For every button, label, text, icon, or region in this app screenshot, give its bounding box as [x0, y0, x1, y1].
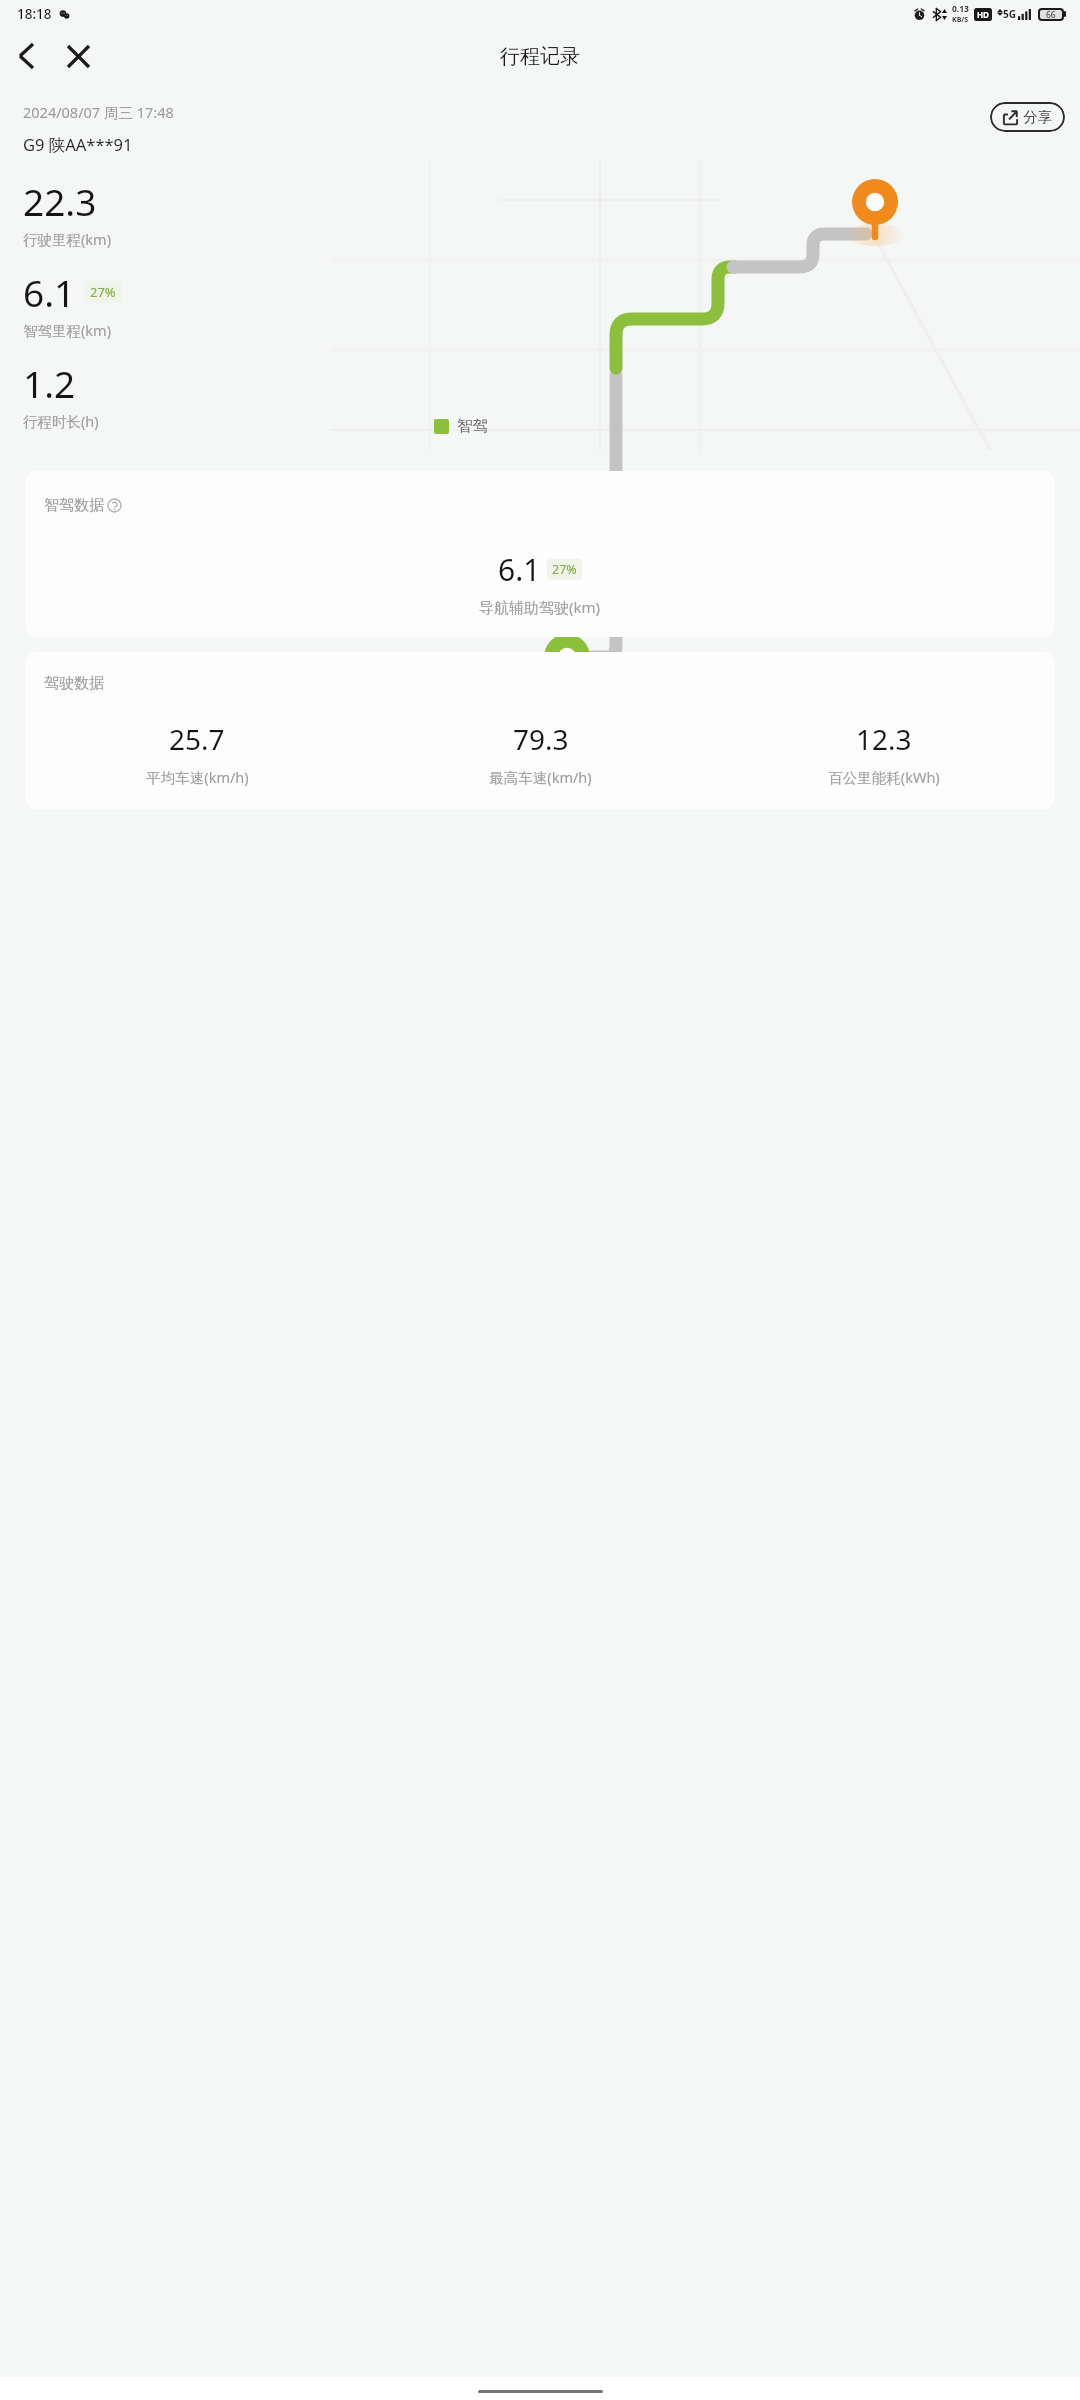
staticText: 百公里能耗(kWh) [828, 767, 940, 787]
staticText: 12.3 [856, 720, 912, 758]
staticText: 分享 [1023, 108, 1052, 126]
staticText: 18:18 [17, 5, 52, 23]
button[interactable]: Close [52, 30, 104, 82]
staticText: 6.1 [498, 549, 541, 590]
staticText: 79.3 [513, 720, 569, 758]
button[interactable]: Back [0, 30, 52, 82]
staticText: 行驶里程(km) [23, 229, 112, 249]
staticText: 平均车速(km/h) [146, 767, 249, 787]
staticText: 27% [552, 561, 577, 578]
staticText: 0.13 [952, 3, 969, 15]
staticText: 行程时长(h) [23, 411, 99, 431]
staticText: 22.3 [23, 176, 97, 226]
button[interactable]: 驾驶数据 [25, 652, 1055, 809]
staticText: 27% [90, 283, 116, 301]
staticText: 智驾数据 [44, 496, 104, 515]
staticText: KB/S [952, 15, 969, 25]
staticText: 智驾里程(km) [23, 320, 112, 340]
button[interactable]: 分享 [990, 102, 1065, 132]
staticText: 行程记录 [500, 44, 580, 69]
staticText: 智驾 [457, 416, 488, 436]
staticText: 25.7 [169, 720, 225, 758]
staticText: 1.2 [23, 358, 76, 408]
staticText: 2024/08/07 周三 17:48 [23, 102, 174, 122]
staticText: G9 陕AA***91 [23, 133, 133, 156]
staticText: HD [977, 9, 989, 20]
staticText: 5G [1003, 7, 1016, 21]
staticText: 6.1 [23, 267, 76, 317]
button[interactable]: 智驾数据 [25, 471, 1055, 637]
staticText: 最高车速(km/h) [489, 767, 592, 787]
staticText: 导航辅助驾驶(km) [479, 597, 601, 617]
staticText: 66 [1046, 9, 1056, 21]
staticText: 驾驶数据 [44, 674, 104, 693]
